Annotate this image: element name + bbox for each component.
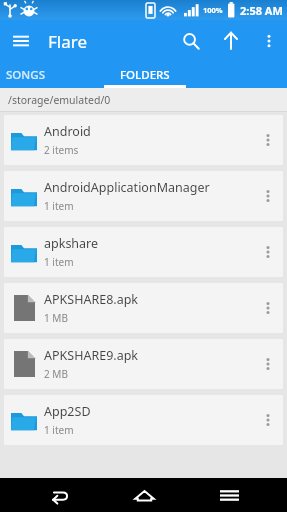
button[interactable]: More options for App2SD bbox=[253, 395, 283, 445]
staticText: 1 item bbox=[44, 255, 74, 269]
staticText: 2 items bbox=[44, 143, 79, 157]
staticText: /storage/emulated/0 bbox=[8, 93, 111, 107]
button[interactable]: Open navigation drawer bbox=[0, 20, 42, 62]
button[interactable]: Back bbox=[30, 478, 86, 512]
button[interactable]: Recent apps bbox=[201, 478, 257, 512]
staticText: 1 item bbox=[44, 423, 74, 437]
button[interactable]: More options for APKSHARE8.apk bbox=[253, 283, 283, 333]
staticText: APKSHARE8.apk bbox=[44, 291, 139, 308]
button[interactable]: More options for APKSHARE9.apk bbox=[253, 339, 283, 389]
staticText: SONGS bbox=[6, 67, 45, 83]
staticText: AndroidApplicationManager bbox=[44, 179, 210, 196]
button[interactable]: Go up one level bbox=[211, 21, 251, 61]
button[interactable]: App2SD bbox=[4, 395, 283, 445]
button[interactable]: FOLDERS bbox=[100, 62, 190, 88]
button[interactable]: Search bbox=[171, 21, 211, 61]
staticText: FOLDERS bbox=[120, 67, 170, 83]
button[interactable]: AndroidApplicationManager bbox=[4, 171, 283, 221]
button[interactable]: More options for apkshare bbox=[253, 227, 283, 277]
staticText: 2:58 AM bbox=[240, 3, 283, 18]
staticText: apkshare bbox=[44, 235, 99, 252]
staticText: Android bbox=[44, 123, 91, 140]
staticText: App2SD bbox=[44, 403, 91, 420]
button[interactable]: More options for Android bbox=[253, 115, 283, 165]
button[interactable]: More options for AndroidApplicationManag… bbox=[253, 171, 283, 221]
button[interactable]: Android bbox=[4, 115, 283, 165]
button[interactable]: More options bbox=[251, 23, 287, 59]
staticText: 100% bbox=[203, 5, 223, 15]
button[interactable]: apkshare bbox=[4, 227, 283, 277]
staticText: 2 MB bbox=[44, 367, 68, 381]
button[interactable]: Home bbox=[116, 478, 172, 512]
button[interactable]: SONGS bbox=[0, 62, 62, 88]
staticText: APKSHARE9.apk bbox=[44, 347, 139, 364]
button[interactable]: APKSHARE9.apk bbox=[4, 339, 283, 389]
staticText: 1 item bbox=[44, 199, 74, 213]
button[interactable]: APKSHARE8.apk bbox=[4, 283, 283, 333]
staticText: Flare bbox=[48, 30, 171, 53]
staticText: 1 MB bbox=[44, 311, 68, 325]
